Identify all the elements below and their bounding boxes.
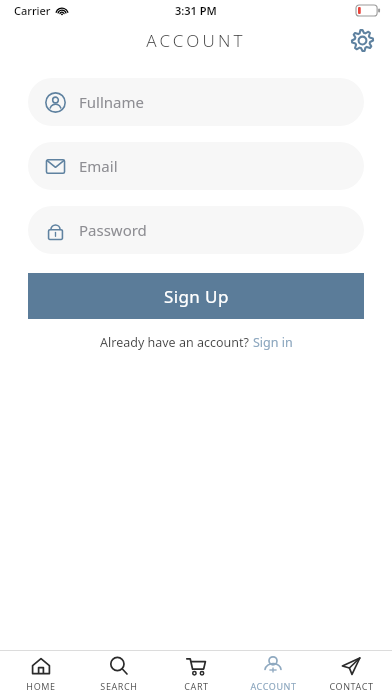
- button[interactable]: Sign Up: [28, 273, 364, 319]
- button[interactable]: ACCOUNT: [237, 651, 309, 696]
- staticText: Email: [79, 156, 118, 176]
- staticText: Password: [79, 220, 147, 240]
- staticText: Already have an account?: [100, 334, 253, 351]
- button[interactable]: Email: [28, 142, 364, 190]
- staticText: Sign Up: [164, 285, 229, 308]
- staticText: Carrier: [14, 3, 51, 18]
- button[interactable]: SEARCH: [83, 651, 155, 696]
- staticText: HOME: [26, 680, 56, 692]
- staticText: ACCOUNT: [146, 29, 246, 52]
- button[interactable]: Settings: [342, 20, 382, 60]
- staticText: 3:31 PM: [175, 3, 217, 18]
- staticText: CART: [184, 680, 209, 692]
- staticText: Fullname: [79, 92, 144, 112]
- button[interactable]: CONTACT: [315, 651, 387, 696]
- button[interactable]: Fullname: [28, 78, 364, 126]
- button[interactable]: Password: [28, 206, 364, 254]
- staticText: SEARCH: [100, 680, 138, 692]
- button[interactable]: HOME: [5, 651, 77, 696]
- button[interactable]: CART: [160, 651, 232, 696]
- staticText: Sign in: [253, 334, 293, 351]
- staticText: CONTACT: [329, 680, 374, 692]
- button[interactable]: Sign in: [253, 334, 293, 351]
- staticText: ACCOUNT: [250, 680, 297, 692]
